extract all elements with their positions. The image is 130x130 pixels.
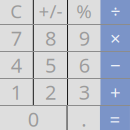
staticText: 2 [45, 79, 56, 105]
button[interactable]: 7 [0, 25, 33, 51]
staticText: C [10, 0, 22, 23]
button[interactable]: ÷ [100, 0, 130, 24]
staticText: = [109, 107, 120, 130]
button[interactable]: + [100, 79, 130, 105]
staticText: 5 [45, 52, 56, 78]
staticText: 6 [79, 52, 90, 78]
staticText: × [110, 26, 121, 50]
button[interactable]: C [0, 0, 33, 24]
staticText: % [76, 0, 92, 23]
button[interactable]: 5 [34, 52, 67, 78]
staticText: 1 [11, 79, 22, 105]
staticText: − [110, 53, 121, 77]
button[interactable]: 6 [68, 52, 100, 78]
staticText: +/- [38, 0, 62, 23]
button[interactable]: − [100, 52, 130, 78]
staticText: 4 [11, 52, 22, 78]
staticText: 9 [79, 25, 90, 51]
staticText: 0 [28, 106, 39, 130]
button[interactable]: 0 [0, 106, 67, 130]
button[interactable]: 1 [0, 79, 33, 105]
button[interactable]: = [100, 106, 130, 130]
button[interactable]: . [68, 106, 100, 130]
button[interactable]: 4 [0, 52, 33, 78]
staticText: . [81, 106, 86, 130]
button[interactable]: 2 [34, 79, 67, 105]
button[interactable]: × [100, 25, 130, 51]
button[interactable]: % [68, 0, 100, 24]
button[interactable]: 8 [34, 25, 67, 51]
button[interactable]: 3 [68, 79, 100, 105]
button[interactable]: +/- [34, 0, 67, 24]
staticText: + [110, 80, 121, 104]
staticText: 8 [45, 25, 56, 51]
button[interactable]: 9 [68, 25, 100, 51]
staticText: 3 [79, 79, 90, 105]
staticText: ÷ [110, 0, 120, 22]
staticText: 7 [11, 25, 22, 51]
